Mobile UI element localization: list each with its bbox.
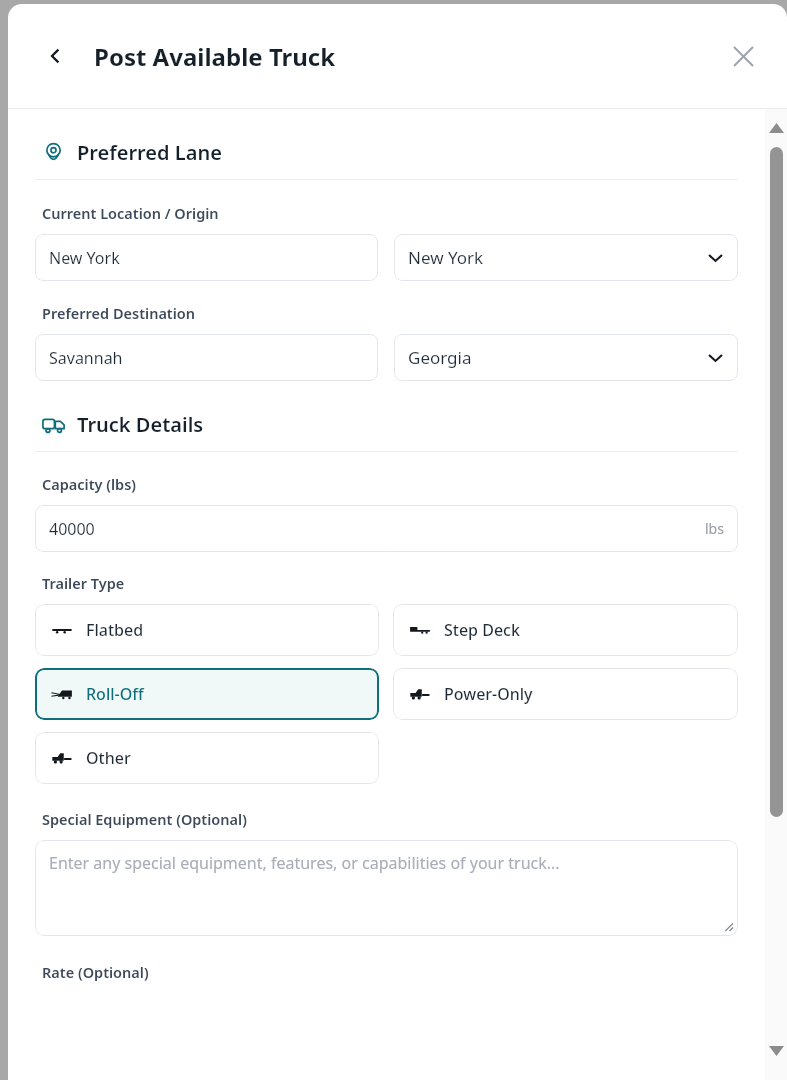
staticText: Preferred Destination (42, 303, 196, 323)
button[interactable]: Back (36, 36, 76, 76)
staticText: Enter any special equipment, features, o… (49, 852, 560, 874)
button[interactable]: Step Deck (393, 604, 738, 656)
button[interactable]: Roll-Off (35, 668, 379, 720)
button[interactable]: Savannah (35, 334, 378, 381)
button[interactable]: Close (721, 34, 765, 78)
button[interactable]: Flatbed (35, 604, 379, 656)
button[interactable]: Georgia (394, 334, 738, 381)
staticText: Current Location / Origin (42, 203, 219, 223)
staticText: Flatbed (86, 619, 144, 641)
staticText: Rate (Optional) (42, 962, 149, 982)
staticText: lbs (705, 519, 724, 538)
staticText: Power-Only (444, 683, 533, 705)
staticText: Step Deck (444, 619, 520, 641)
button[interactable]: Other (35, 732, 379, 784)
button[interactable]: 40000 (35, 505, 738, 552)
staticText: Georgia (408, 346, 472, 369)
staticText: Roll-Off (86, 683, 144, 705)
staticText: New York (408, 246, 484, 269)
staticText: Truck Details (77, 411, 204, 438)
button[interactable]: New York (394, 234, 738, 281)
staticText: Preferred Lane (77, 139, 222, 166)
staticText: Savannah (49, 347, 123, 369)
button[interactable]: New York (35, 234, 378, 281)
staticText: Capacity (lbs) (42, 474, 137, 494)
staticText: Other (86, 747, 131, 769)
staticText: Special Equipment (Optional) (42, 809, 247, 829)
button[interactable]: Power-Only (393, 668, 738, 720)
staticText: Post Available Truck (94, 40, 336, 73)
staticText: New York (49, 247, 120, 269)
button[interactable]: Enter any special equipment, features, o… (35, 840, 738, 936)
staticText: Trailer Type (42, 573, 125, 593)
staticText: 40000 (49, 518, 95, 540)
